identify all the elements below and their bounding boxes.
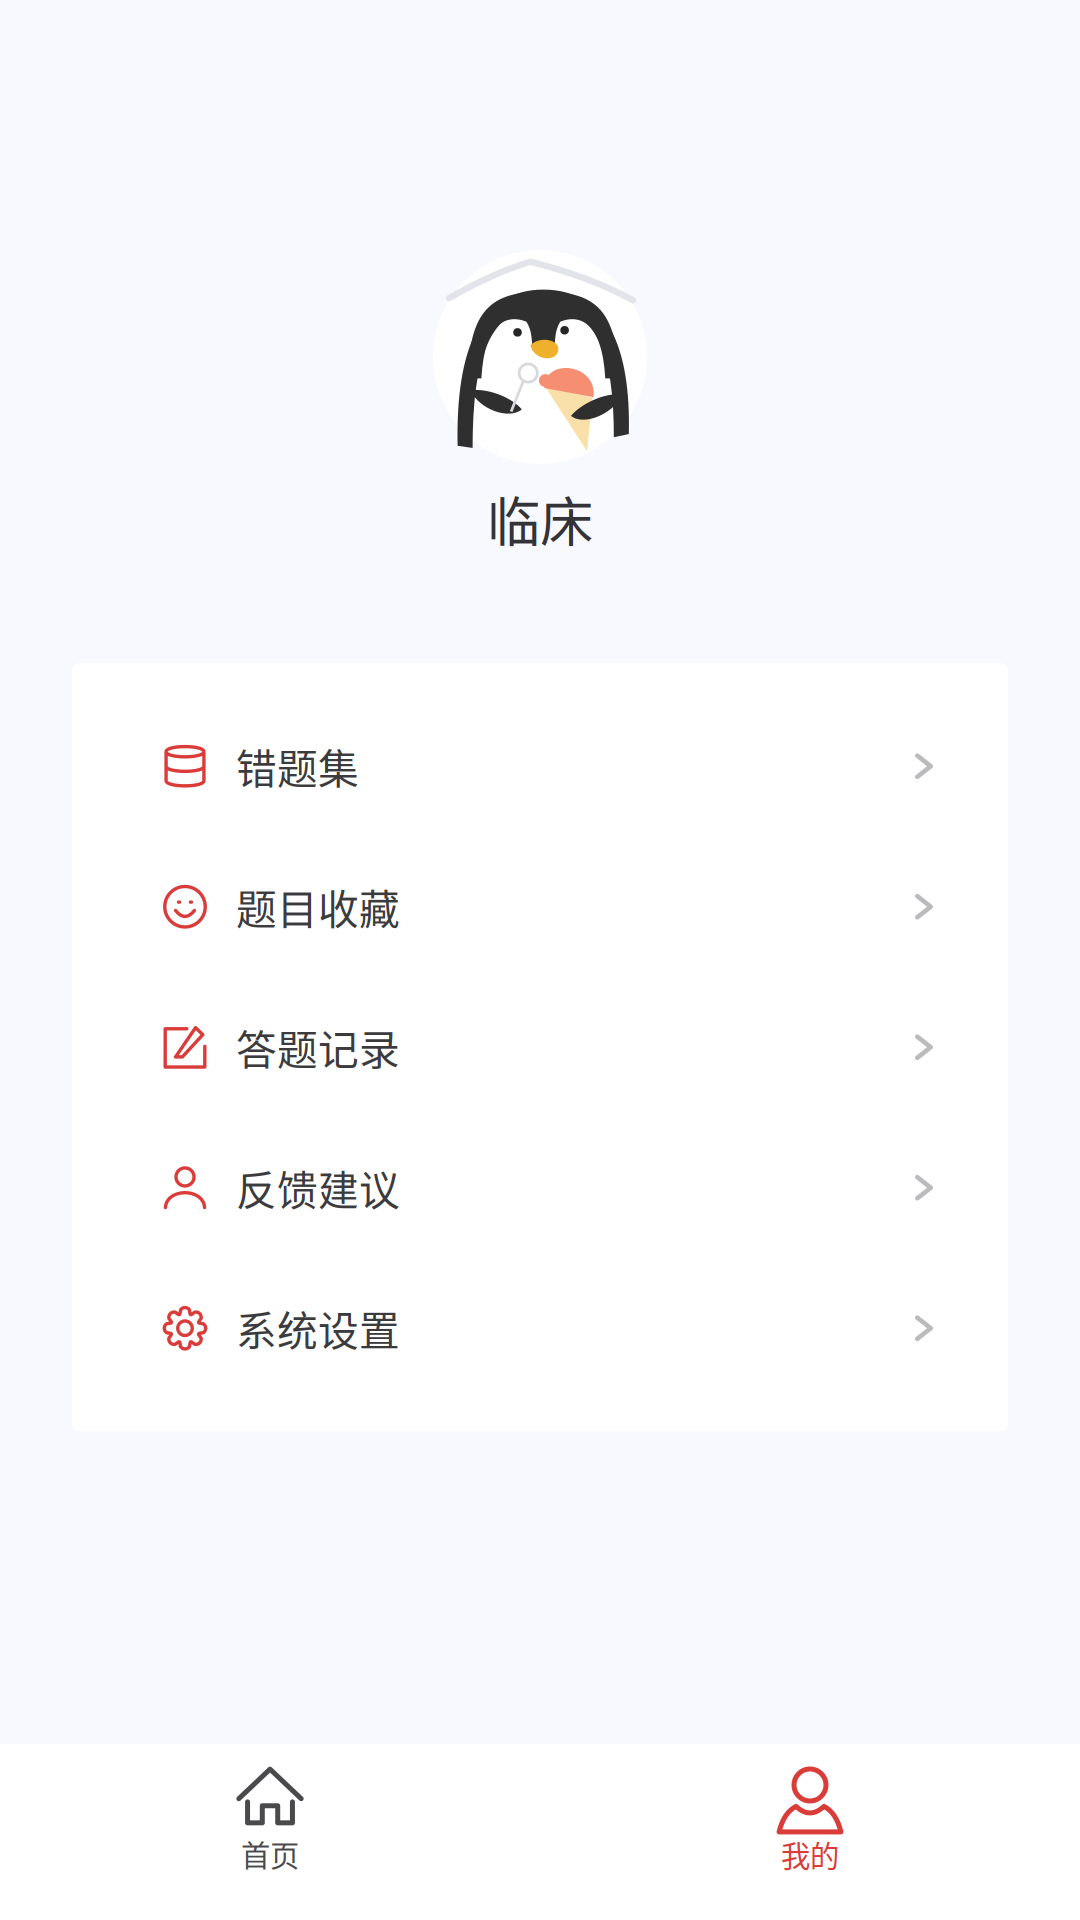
staticText: 错题集	[236, 737, 359, 796]
button[interactable]: 题目收藏	[72, 836, 1008, 977]
staticText: 题目收藏	[236, 877, 400, 936]
staticText: 系统设置	[236, 1299, 400, 1358]
staticText: 我的	[781, 1833, 839, 1875]
button[interactable]: 错题集	[72, 696, 1008, 836]
button[interactable]: 我的	[540, 1766, 1080, 1875]
staticText: 首页	[241, 1832, 299, 1875]
button[interactable]: 首页	[0, 1766, 540, 1875]
button[interactable]: 答题记录	[72, 977, 1008, 1117]
staticText: 反馈建议	[236, 1158, 400, 1217]
button[interactable]: 反馈建议	[72, 1117, 1008, 1258]
staticText: 临床	[487, 480, 593, 557]
staticText: 答题记录	[236, 1018, 400, 1077]
button[interactable]: 系统设置	[72, 1258, 1008, 1398]
